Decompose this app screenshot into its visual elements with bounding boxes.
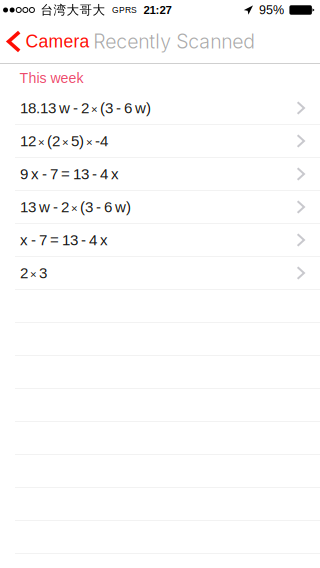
staticText: 9 x - 7 = 13 - 4 x bbox=[20, 166, 119, 182]
staticText: 18.13 w - 2 × (3 - 6 w) bbox=[20, 100, 151, 116]
staticText: Camera bbox=[25, 32, 89, 51]
staticText: GPRS bbox=[112, 5, 137, 15]
button[interactable]: Camera bbox=[0, 20, 93, 63]
staticText: 13 w - 2 × (3 - 6 w) bbox=[20, 199, 131, 215]
button[interactable]: 9 x - 7 = 13 - 4 x bbox=[0, 158, 320, 191]
button[interactable]: 12 × (2 × 5) × -4 bbox=[0, 125, 320, 158]
staticText: 95% bbox=[259, 3, 284, 17]
staticText: Recently Scanned bbox=[93, 30, 255, 53]
staticText: x - 7 = 13 - 4 x bbox=[20, 232, 108, 248]
staticText: 12 × (2 × 5) × -4 bbox=[20, 133, 108, 149]
staticText: 2 × 3 bbox=[20, 265, 47, 281]
staticText: 21:27 bbox=[143, 4, 171, 16]
button[interactable]: 2 × 3 bbox=[0, 257, 320, 290]
button[interactable]: 18.13 w - 2 × (3 - 6 w) bbox=[0, 92, 320, 125]
staticText: This week bbox=[19, 70, 83, 86]
button[interactable]: x - 7 = 13 - 4 x bbox=[0, 224, 320, 257]
button[interactable]: 13 w - 2 × (3 - 6 w) bbox=[0, 191, 320, 224]
staticText: 台湾大哥大 bbox=[40, 2, 105, 18]
